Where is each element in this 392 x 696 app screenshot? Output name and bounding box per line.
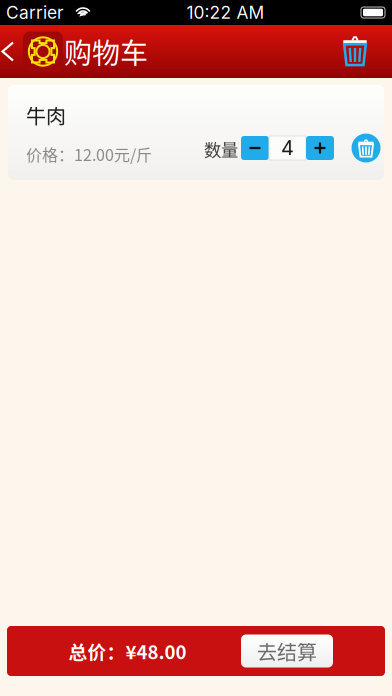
staticText: 4: [281, 136, 294, 160]
staticText: 总价：¥48.00: [68, 637, 186, 664]
button[interactable]: Increase quantity: [306, 136, 334, 160]
staticText: 购物车: [64, 31, 148, 72]
button[interactable]: 去结算: [241, 634, 333, 667]
staticText: 牛肉: [26, 100, 66, 129]
staticText: 去结算: [257, 636, 317, 665]
staticText: 10:22 AM: [186, 2, 264, 23]
button[interactable]: Decrease quantity: [241, 136, 269, 160]
staticText: [64, 0, 76, 27]
staticText: 价格：12.00元/斤: [26, 142, 152, 166]
button[interactable]: Empty cart: [342, 30, 392, 72]
button[interactable]: Remove item: [348, 130, 384, 166]
button[interactable]: Back: [0, 27, 63, 75]
staticText: 数量: [204, 136, 238, 162]
staticText: Carrier: [6, 2, 64, 23]
